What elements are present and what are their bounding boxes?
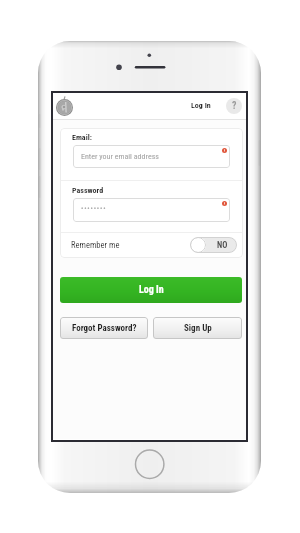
staticText: NO — [217, 240, 228, 250]
button[interactable]: Sign Up — [153, 317, 242, 339]
button[interactable]: Log In — [189, 99, 213, 112]
staticText: ? — [232, 100, 237, 112]
button[interactable]: Remember me, off — [190, 237, 237, 253]
staticText: Log In — [191, 101, 211, 110]
staticText: Log In — [139, 284, 164, 296]
staticText: Sign Up — [184, 323, 212, 334]
button[interactable]: Forgot Password? — [60, 317, 148, 339]
button[interactable]: Agency seal — [55, 97, 74, 116]
button[interactable]: •••••••• — [73, 198, 230, 222]
staticText: Remember me — [71, 240, 120, 250]
staticText: •••••••• — [81, 205, 107, 213]
staticText: Password — [72, 186, 104, 195]
button[interactable]: Help — [226, 98, 242, 114]
staticText: Enter your email address — [81, 152, 159, 161]
staticText: Forgot Password? — [72, 323, 137, 334]
staticText: Email: — [72, 133, 92, 142]
button[interactable]: Enter your email address — [73, 145, 230, 168]
button[interactable]: Remember me — [60, 233, 243, 257]
button[interactable]: Log In — [60, 277, 242, 303]
